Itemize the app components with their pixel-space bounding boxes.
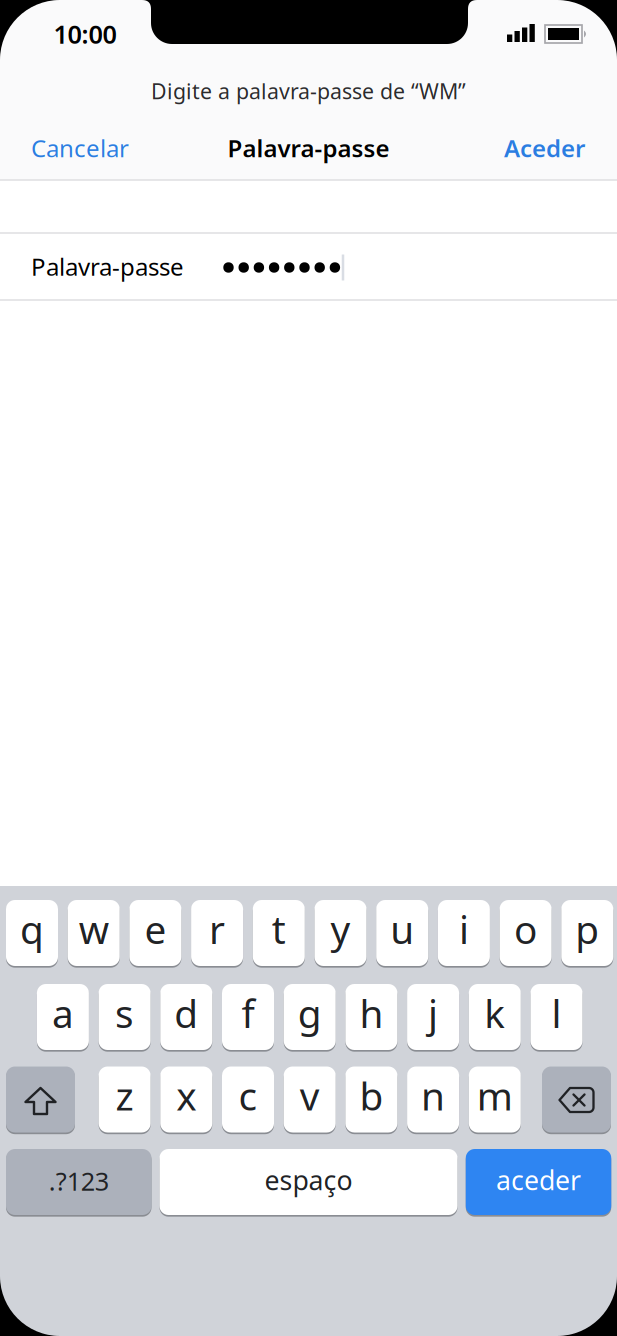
button[interactable]: v bbox=[284, 1065, 336, 1133]
button[interactable]: e bbox=[129, 899, 181, 967]
staticText: n bbox=[421, 1070, 445, 1121]
button[interactable]: c bbox=[222, 1065, 274, 1133]
button[interactable]: l bbox=[530, 983, 582, 1051]
button[interactable]: i bbox=[438, 899, 490, 967]
button[interactable]: Delete bbox=[542, 1065, 611, 1133]
staticText: 10:00 bbox=[53, 17, 116, 51]
button[interactable]: b bbox=[345, 1065, 397, 1133]
staticText: p bbox=[575, 903, 599, 955]
staticText: y bbox=[330, 903, 350, 955]
button[interactable]: .?123 bbox=[6, 1148, 151, 1216]
staticText: d bbox=[174, 987, 198, 1039]
staticText: k bbox=[484, 987, 505, 1039]
button[interactable]: d bbox=[160, 983, 212, 1051]
staticText: t bbox=[272, 903, 286, 955]
staticText: l bbox=[551, 987, 561, 1039]
staticText: Cancelar bbox=[31, 132, 129, 164]
staticText: x bbox=[176, 1070, 196, 1121]
staticText: Aceder bbox=[504, 132, 585, 164]
button[interactable]: r bbox=[191, 899, 243, 967]
button[interactable]: Aceder bbox=[504, 132, 585, 164]
button[interactable]: aceder bbox=[466, 1148, 611, 1216]
staticText: Palavra-passe bbox=[31, 251, 184, 282]
button[interactable]: q bbox=[6, 899, 58, 967]
button[interactable]: o bbox=[500, 899, 552, 967]
button[interactable]: s bbox=[99, 983, 151, 1051]
button[interactable]: g bbox=[284, 983, 336, 1051]
button[interactable]: w bbox=[68, 899, 120, 967]
staticText: g bbox=[298, 987, 322, 1039]
staticText: v bbox=[300, 1070, 320, 1121]
staticText: .?123 bbox=[49, 1164, 109, 1198]
staticText: w bbox=[79, 903, 109, 955]
staticText: o bbox=[514, 903, 537, 955]
staticText: Digite a palavra-passe de “WM” bbox=[151, 77, 466, 105]
button[interactable]: k bbox=[469, 983, 521, 1051]
staticText: b bbox=[359, 1070, 383, 1121]
staticText: Palavra-passe bbox=[227, 132, 389, 164]
staticText: i bbox=[459, 903, 469, 955]
button[interactable]: espaço bbox=[159, 1148, 457, 1216]
button[interactable]: h bbox=[345, 983, 397, 1051]
staticText: s bbox=[115, 987, 134, 1039]
button[interactable]: z bbox=[99, 1065, 151, 1133]
staticText: q bbox=[20, 903, 44, 955]
staticText: c bbox=[238, 1070, 257, 1121]
staticText: espaço bbox=[264, 1162, 352, 1198]
button[interactable]: a bbox=[37, 983, 89, 1051]
staticText: z bbox=[116, 1070, 134, 1121]
button[interactable]: x bbox=[160, 1065, 212, 1133]
button[interactable]: m bbox=[469, 1065, 521, 1133]
staticText: u bbox=[390, 903, 414, 955]
button[interactable]: n bbox=[407, 1065, 459, 1133]
button[interactable]: Shift bbox=[6, 1065, 75, 1133]
button[interactable]: j bbox=[407, 983, 459, 1051]
staticText: r bbox=[209, 903, 225, 955]
staticText: m bbox=[477, 1070, 513, 1121]
staticText: aceder bbox=[496, 1162, 581, 1198]
staticText: f bbox=[241, 987, 254, 1039]
button[interactable]: Cancelar bbox=[31, 132, 129, 164]
staticText: e bbox=[144, 903, 166, 955]
button[interactable]: f bbox=[222, 983, 274, 1051]
staticText: h bbox=[359, 987, 383, 1039]
button[interactable]: t bbox=[253, 899, 305, 967]
button[interactable]: p bbox=[561, 899, 613, 967]
button[interactable]: y bbox=[314, 899, 366, 967]
staticText: a bbox=[52, 987, 74, 1039]
button[interactable]: u bbox=[376, 899, 428, 967]
staticText: j bbox=[428, 987, 438, 1039]
button[interactable]: Palavra-passe bbox=[0, 234, 617, 299]
